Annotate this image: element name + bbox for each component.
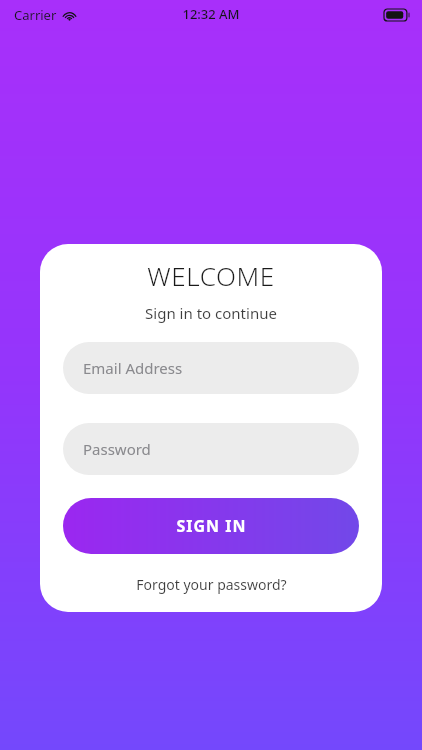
button[interactable]: SIGN IN [63, 498, 359, 554]
button[interactable]: Password [63, 423, 359, 475]
staticText: SIGN IN [176, 515, 247, 537]
staticText: WELCOME [147, 258, 275, 293]
staticText: Password [83, 439, 151, 459]
button[interactable]: Forgot your password? [128, 572, 295, 597]
staticText: Forgot your password? [136, 575, 287, 594]
staticText: Sign in to continue [145, 303, 277, 323]
staticText: 12:32 AM [182, 5, 240, 23]
button[interactable]: Email Address [63, 342, 359, 394]
staticText: Carrier [14, 6, 57, 24]
staticText: Email Address [83, 358, 183, 378]
